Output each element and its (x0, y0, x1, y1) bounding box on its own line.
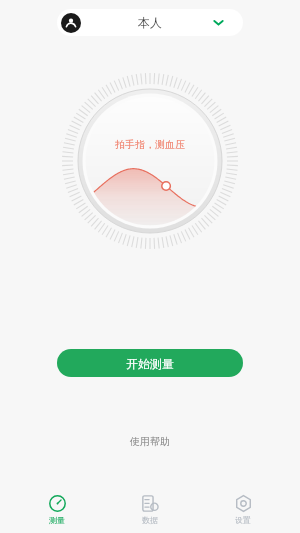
button[interactable]: Data (114, 491, 186, 529)
button[interactable]: Blood pressure measurement gauge (62, 73, 238, 249)
button[interactable]: Settings (207, 491, 279, 529)
other: Settings (235, 495, 252, 512)
staticText: 设置 (235, 515, 251, 525)
button[interactable]: 使用帮助 (114, 429, 186, 454)
other: Data (142, 495, 159, 512)
staticText: 开始测量 (126, 356, 174, 371)
other: Expand user selector (213, 17, 224, 28)
staticText: 数据 (142, 515, 158, 525)
other: Measure (49, 495, 66, 512)
other: User avatar (61, 13, 81, 33)
staticText: 拍手指，测血压 (115, 138, 185, 151)
button[interactable]: 开始测量 (57, 349, 243, 377)
button[interactable]: User avatar (57, 9, 243, 36)
staticText: 测量 (49, 515, 65, 525)
staticText: 本人 (138, 15, 162, 30)
button[interactable]: Measure (21, 491, 93, 529)
